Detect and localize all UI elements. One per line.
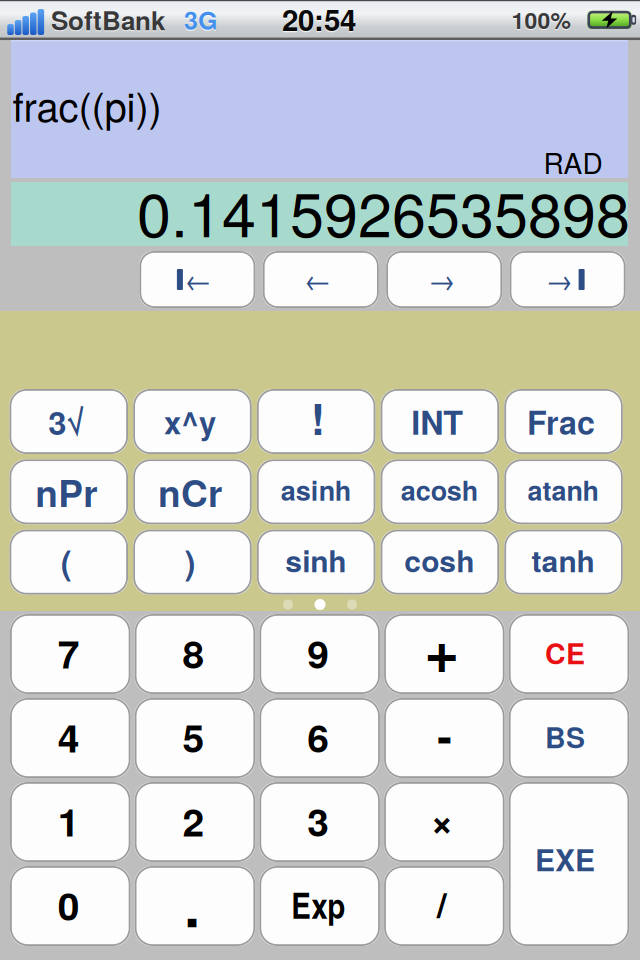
button[interactable]: Move right <box>386 251 502 308</box>
button[interactable]: Move to start <box>139 251 255 308</box>
button[interactable]: ( <box>9 530 128 595</box>
button[interactable]: CE <box>509 614 629 694</box>
staticText: frac((pi)) <box>12 76 161 133</box>
staticText: 0.1415926535898 <box>137 167 630 255</box>
staticText: 8 <box>182 625 204 680</box>
button[interactable]: 9 <box>259 614 380 694</box>
staticText: INT <box>411 398 463 445</box>
staticText: 5 <box>182 709 204 764</box>
button[interactable]: nPr <box>9 459 128 524</box>
staticText: cosh <box>404 539 474 582</box>
button[interactable]: × <box>384 782 505 862</box>
button[interactable]: BS <box>509 698 629 778</box>
staticText: asinh <box>281 470 351 509</box>
staticText: BS <box>545 716 585 757</box>
button[interactable]: nCr <box>133 459 252 524</box>
button[interactable]: 0 <box>10 866 130 946</box>
staticText: nPr <box>35 465 97 518</box>
button[interactable]: 7 <box>10 614 130 694</box>
staticText: 20:54 <box>282 0 356 41</box>
button[interactable]: 3√ <box>9 389 128 454</box>
staticText: 0 <box>58 877 80 932</box>
staticText: CE <box>545 632 585 673</box>
staticText: x^y <box>164 399 216 444</box>
staticText: ) <box>184 537 195 585</box>
staticText: sinh <box>285 539 346 582</box>
staticText: SoftBank <box>51 2 165 39</box>
button[interactable]: asinh <box>257 459 375 524</box>
staticText: 100% <box>511 3 570 36</box>
button[interactable]: EXE <box>509 782 629 946</box>
staticText: - <box>437 703 452 766</box>
staticText: 3 <box>307 793 329 848</box>
staticText: 1 <box>58 793 80 848</box>
staticText: 2 <box>182 793 204 848</box>
staticText: Frac <box>527 398 595 445</box>
staticText: 3G <box>184 2 217 37</box>
button[interactable]: - <box>384 698 505 778</box>
button[interactable]: + <box>384 614 505 694</box>
staticText: nCr <box>158 465 222 518</box>
button[interactable]: ) <box>133 530 252 595</box>
button[interactable]: 2 <box>135 782 255 862</box>
button[interactable]: Move left <box>263 251 379 308</box>
button[interactable]: ! <box>257 389 375 454</box>
staticText: 9 <box>307 625 329 680</box>
button[interactable]: sinh <box>257 530 375 595</box>
staticText: × <box>430 791 453 848</box>
button[interactable]: x^y <box>133 389 252 454</box>
button[interactable]: 5 <box>135 698 255 778</box>
staticText: 3G <box>184 3 217 39</box>
staticText: 6 <box>307 709 329 764</box>
button[interactable]: Exp <box>259 866 380 946</box>
staticText: . <box>184 862 200 945</box>
staticText: 4 <box>58 709 80 764</box>
staticText: acosh <box>401 470 478 509</box>
staticText: → <box>427 258 455 299</box>
staticText: SoftBank <box>51 1 165 38</box>
button[interactable]: 3 <box>259 782 380 862</box>
button[interactable]: Move to end <box>510 251 626 308</box>
staticText: Exp <box>291 879 345 930</box>
staticText: tanh <box>531 539 594 582</box>
staticText: → <box>545 258 573 299</box>
staticText: 20:54 <box>282 0 356 40</box>
staticText: ← <box>184 258 212 299</box>
staticText: 7 <box>58 625 80 680</box>
button[interactable]: 4 <box>10 698 130 778</box>
staticText: RAD <box>543 142 602 182</box>
staticText: 3√ <box>48 398 84 445</box>
staticText: / <box>437 878 447 929</box>
staticText: ( <box>61 537 72 585</box>
button[interactable]: tanh <box>504 530 623 595</box>
button[interactable]: cosh <box>381 530 499 595</box>
staticText: 100% <box>511 4 570 37</box>
button[interactable]: 8 <box>135 614 255 694</box>
button[interactable]: . <box>135 866 255 946</box>
button[interactable]: INT <box>381 389 499 454</box>
button[interactable]: / <box>384 866 505 946</box>
button[interactable]: acosh <box>381 459 499 524</box>
button[interactable]: Frac <box>504 389 623 454</box>
button[interactable]: 6 <box>259 698 380 778</box>
staticText: atanh <box>527 470 598 509</box>
staticText: ← <box>304 258 332 299</box>
button[interactable]: 1 <box>10 782 130 862</box>
staticText: ! <box>311 387 325 448</box>
staticText: + <box>424 605 459 691</box>
button[interactable]: atanh <box>504 459 623 524</box>
staticText: EXE <box>535 837 595 880</box>
